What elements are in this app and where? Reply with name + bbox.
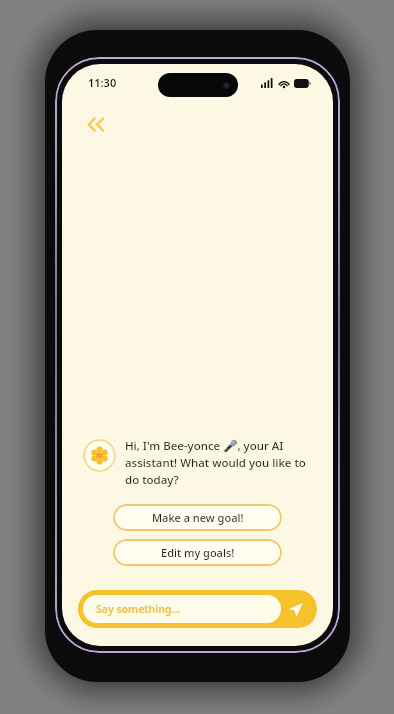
- staticText: Say something...: [96, 602, 181, 616]
- button[interactable]: Hi, I'm Bee-yonce 🎤, your AI assistant! …: [83, 437, 309, 488]
- button[interactable]: Send: [283, 597, 307, 621]
- staticText: Edit my goals!: [161, 545, 235, 560]
- button[interactable]: Edit my goals!: [113, 539, 282, 566]
- staticText: 11:30: [88, 75, 117, 90]
- staticText: Hi, I'm Bee-yonce 🎤, your AI assistant! …: [125, 438, 309, 488]
- staticText: Make a new goal!: [152, 510, 244, 525]
- button[interactable]: Say something...: [78, 590, 317, 628]
- button[interactable]: Make a new goal!: [113, 504, 282, 531]
- button[interactable]: Back: [76, 102, 120, 146]
